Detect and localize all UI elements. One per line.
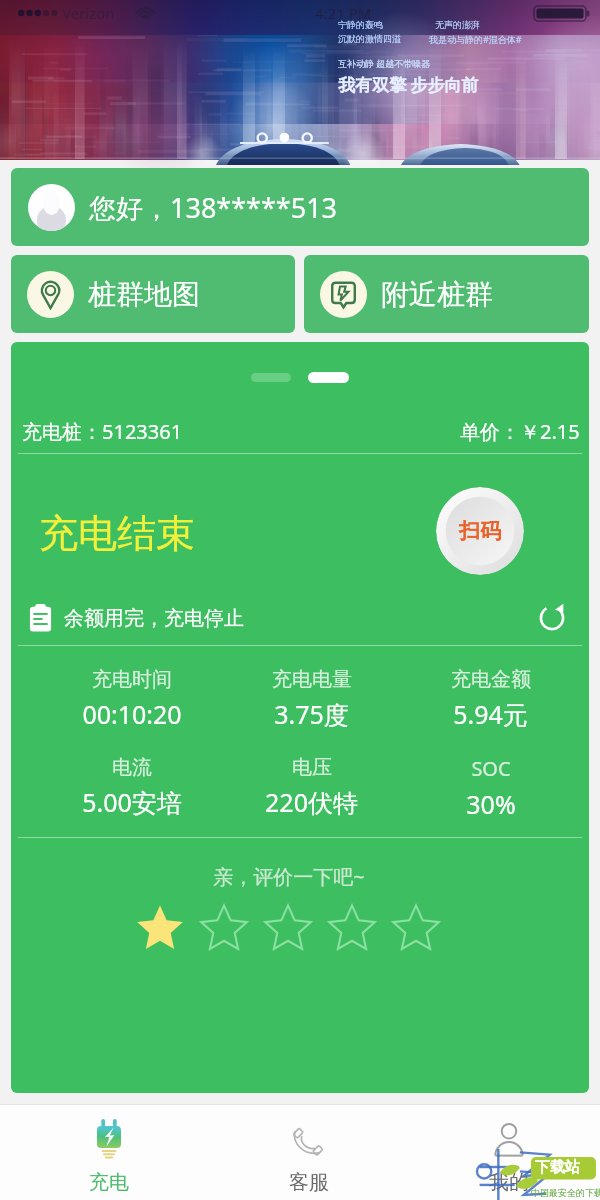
staticText: 充电电量 [272,667,352,692]
staticText: Verizon [62,3,115,23]
staticText: 充电结束 [39,509,195,558]
staticText: 5.94元 [453,697,528,731]
staticText: 充电桩：5123361 [22,418,183,445]
staticText: 3.75度 [274,697,349,731]
button[interactable]: Rate 4 stars [320,896,384,960]
button[interactable]: Page 2 [308,372,349,383]
button[interactable]: 客服 [209,1105,409,1200]
button[interactable]: 充电 [9,1105,209,1200]
button[interactable]: Scan QR code [436,487,524,575]
staticText: 我的 [489,1170,529,1195]
staticText: 沉默的激情四溢 [338,33,401,44]
button[interactable]: Rate 3 stars [256,896,320,960]
staticText: 下载站 [535,1158,580,1177]
staticText: 充电 [89,1170,129,1195]
button[interactable]: Rate 5 stars [384,896,448,960]
staticText: 220伏特 [265,785,358,819]
staticText: 我是动与静的#混合体# [429,33,522,45]
button[interactable]: 您好，138*****513 [11,168,589,246]
staticText: 互补动静 超越不带噪器 [338,57,431,69]
staticText: 您好，138*****513 [89,189,338,226]
button[interactable]: Page 1 [251,373,291,382]
staticText: 30% [466,787,516,821]
staticText: 余额用完，充电停止 [64,606,244,631]
staticText: 无声的澎湃 [435,19,480,30]
button[interactable]: 我的 [409,1105,600,1200]
staticText: 充电时间 [92,667,172,692]
staticText: 宁静的轰鸣 [338,19,383,30]
staticText: SOC [471,755,511,782]
staticText: 充电金额 [451,667,531,692]
staticText: 客服 [289,1170,329,1195]
staticText: 附近桩群 [381,277,493,312]
button[interactable]: 附近桩群 [304,255,589,333]
staticText: 中国最安全的下载站 [531,1187,600,1198]
button[interactable]: Rate 2 stars [192,896,256,960]
staticText: 00:10:20 [82,697,182,731]
staticText: 5.00安培 [82,785,182,819]
staticText: 电压 [292,755,332,780]
staticText: 亲，评价一下吧~ [11,863,567,890]
staticText: 电流 [112,755,152,780]
staticText: 桩群地图 [88,277,200,312]
staticText: 我有双擎 步步向前 [338,73,479,96]
button[interactable]: Refresh [535,601,569,635]
button[interactable]: Rate 1 stars [128,896,192,960]
staticText: 4:21 PM [315,3,372,23]
button[interactable]: 桩群地图 [11,255,295,333]
staticText: 单价：￥2.15 [460,418,580,445]
staticText: 扫码 [459,518,501,544]
